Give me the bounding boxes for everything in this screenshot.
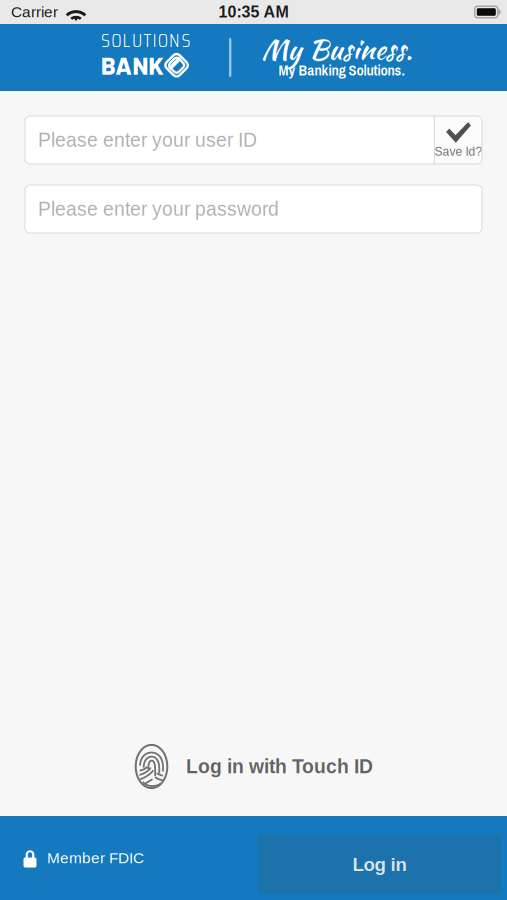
- button[interactable]: Save Id: [435, 116, 482, 164]
- staticText: Log in: [352, 854, 406, 875]
- button[interactable]: Log in with Touch ID: [134, 743, 373, 790]
- staticText: Please enter your user ID: [38, 129, 257, 151]
- staticText: Save Id?: [434, 145, 482, 158]
- staticText: 10:35 AM: [218, 3, 288, 21]
- staticText: My Banking Solutions.: [278, 60, 404, 80]
- staticText: My Business.: [261, 29, 412, 69]
- staticText: Member FDIC: [47, 849, 144, 866]
- button[interactable]: Member FDIC: [0, 836, 144, 879]
- staticText: Log in with Touch ID: [186, 756, 373, 777]
- staticText: SOLUTIONS: [101, 24, 190, 56]
- button[interactable]: Log in: [258, 835, 501, 893]
- staticText: Please enter your password: [38, 198, 279, 220]
- staticText: Carrier: [11, 3, 58, 20]
- staticText: BANK: [101, 51, 164, 80]
